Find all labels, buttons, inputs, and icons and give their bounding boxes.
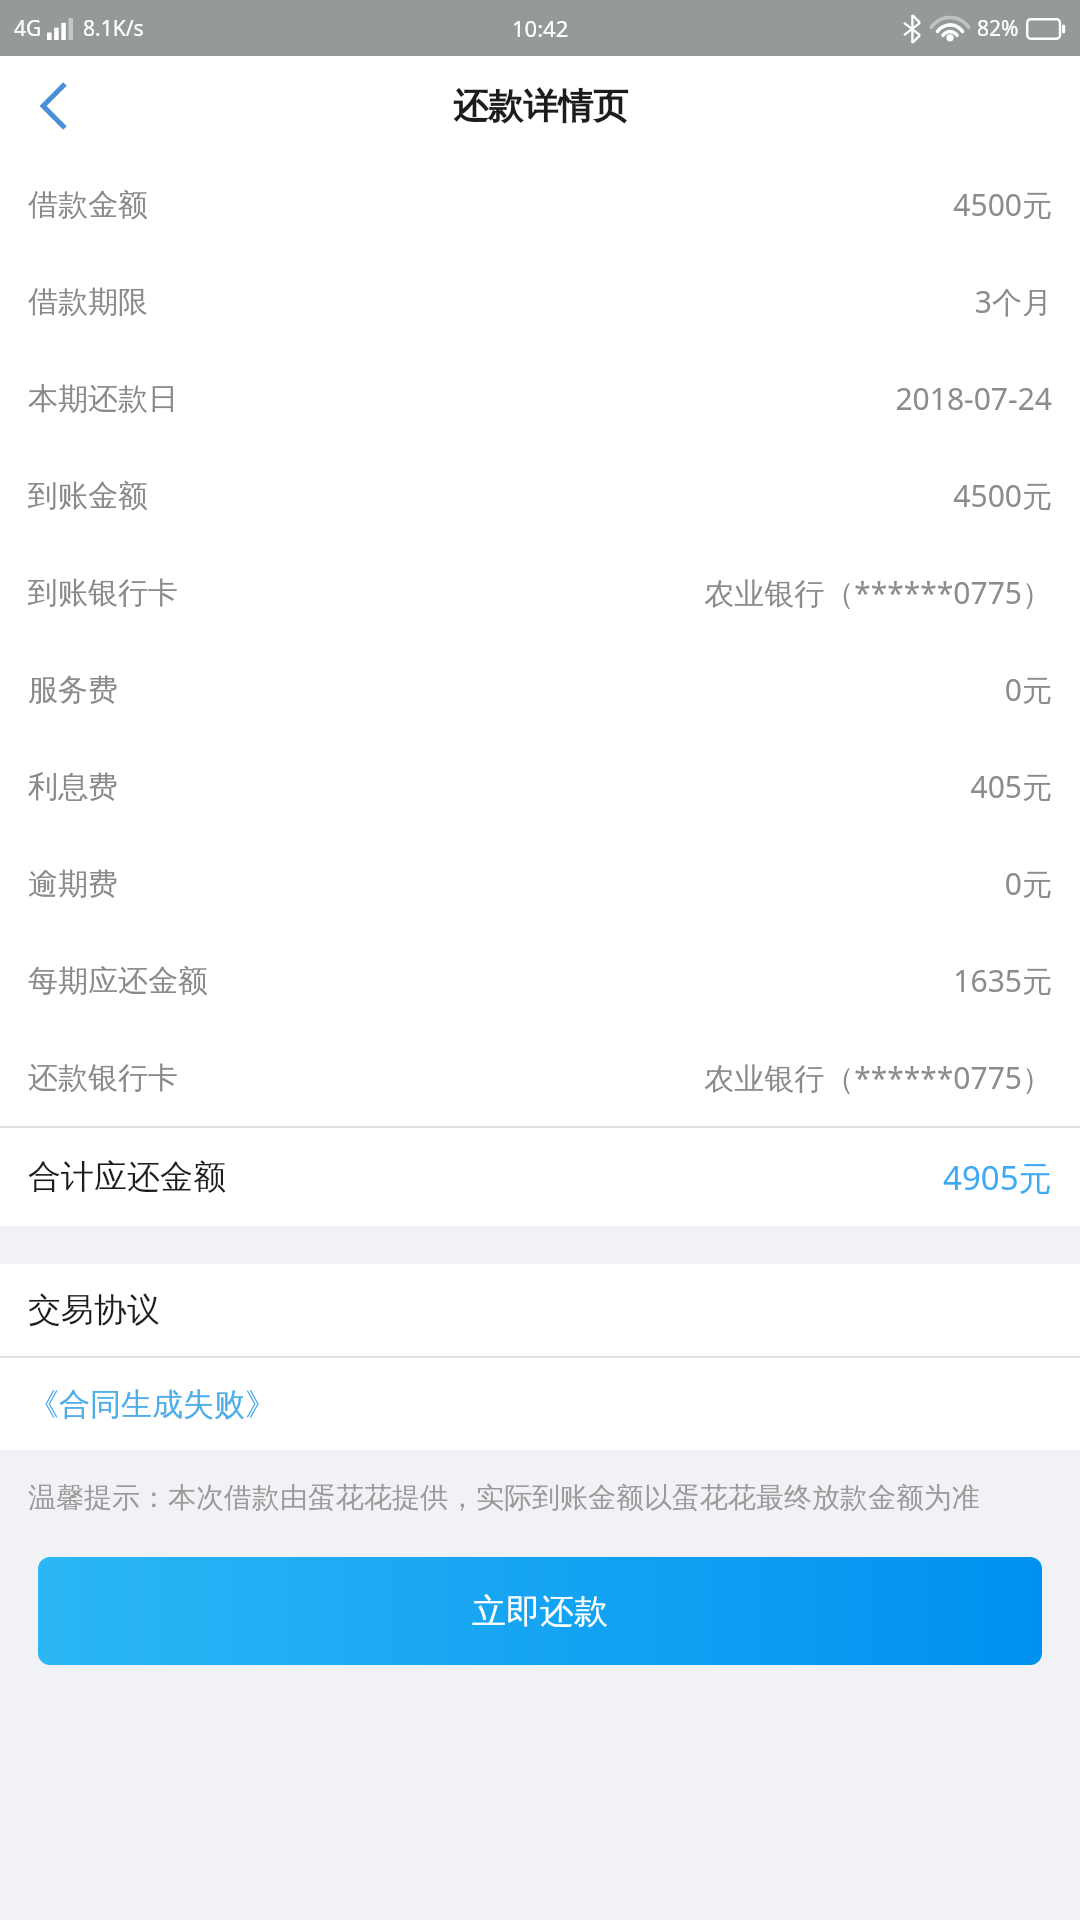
staticText: 0元 — [1004, 669, 1052, 710]
staticText: 3个月 — [974, 281, 1052, 322]
staticText: 每期应还金额 — [28, 962, 208, 1000]
staticText: 交易协议 — [28, 1289, 160, 1331]
staticText: 温馨提示：本次借款由蛋花花提供，实际到账金额以蛋花花最终放款金额为准 — [28, 1480, 1032, 1515]
button[interactable]: Back — [18, 70, 90, 142]
staticText: 合计应还金额 — [28, 1156, 226, 1198]
button[interactable]: 合计应还金额 — [0, 1128, 1080, 1226]
button[interactable]: 交易协议 — [0, 1264, 1080, 1356]
button[interactable]: 服务费 — [0, 641, 1080, 738]
staticText: 立即还款 — [472, 1590, 608, 1633]
button[interactable]: 本期还款日 — [0, 350, 1080, 447]
staticText: 10:42 — [512, 13, 569, 43]
staticText: 本期还款日 — [28, 380, 178, 418]
staticText: 还款详情页 — [453, 84, 628, 128]
staticText: 服务费 — [28, 671, 118, 709]
button[interactable]: 到账金额 — [0, 447, 1080, 544]
staticText: 借款期限 — [28, 283, 148, 321]
button[interactable]: 每期应还金额 — [0, 932, 1080, 1029]
staticText: 到账银行卡 — [28, 574, 178, 612]
staticText: 《合同生成失败》 — [28, 1385, 276, 1424]
staticText: 4905元 — [943, 1155, 1052, 1200]
staticText: 农业银行（******0775） — [704, 1057, 1052, 1098]
staticText: 逾期费 — [28, 865, 118, 903]
staticText: 0元 — [1004, 863, 1052, 904]
staticText: 2018-07-24 — [895, 378, 1052, 419]
button[interactable]: 利息费 — [0, 738, 1080, 835]
staticText: 利息费 — [28, 768, 118, 806]
button[interactable]: 《合同生成失败》 — [0, 1358, 1080, 1450]
button[interactable]: 借款期限 — [0, 253, 1080, 350]
button[interactable]: 立即还款 — [38, 1557, 1042, 1665]
button[interactable]: 逾期费 — [0, 835, 1080, 932]
staticText: 405元 — [970, 766, 1052, 807]
staticText: 4500元 — [953, 184, 1052, 225]
staticText: 82% — [977, 14, 1019, 43]
button[interactable]: 还款银行卡 — [0, 1029, 1080, 1126]
staticText: 农业银行（******0775） — [704, 572, 1052, 613]
staticText: 还款银行卡 — [28, 1059, 178, 1097]
button[interactable]: 借款金额 — [0, 156, 1080, 253]
staticText: 4500元 — [953, 475, 1052, 516]
staticText: 4G — [14, 14, 42, 43]
staticText: 到账金额 — [28, 477, 148, 515]
staticText: 8.1K/s — [83, 14, 144, 43]
staticText: 借款金额 — [28, 186, 148, 224]
button[interactable]: 到账银行卡 — [0, 544, 1080, 641]
staticText: 1635元 — [953, 960, 1052, 1001]
